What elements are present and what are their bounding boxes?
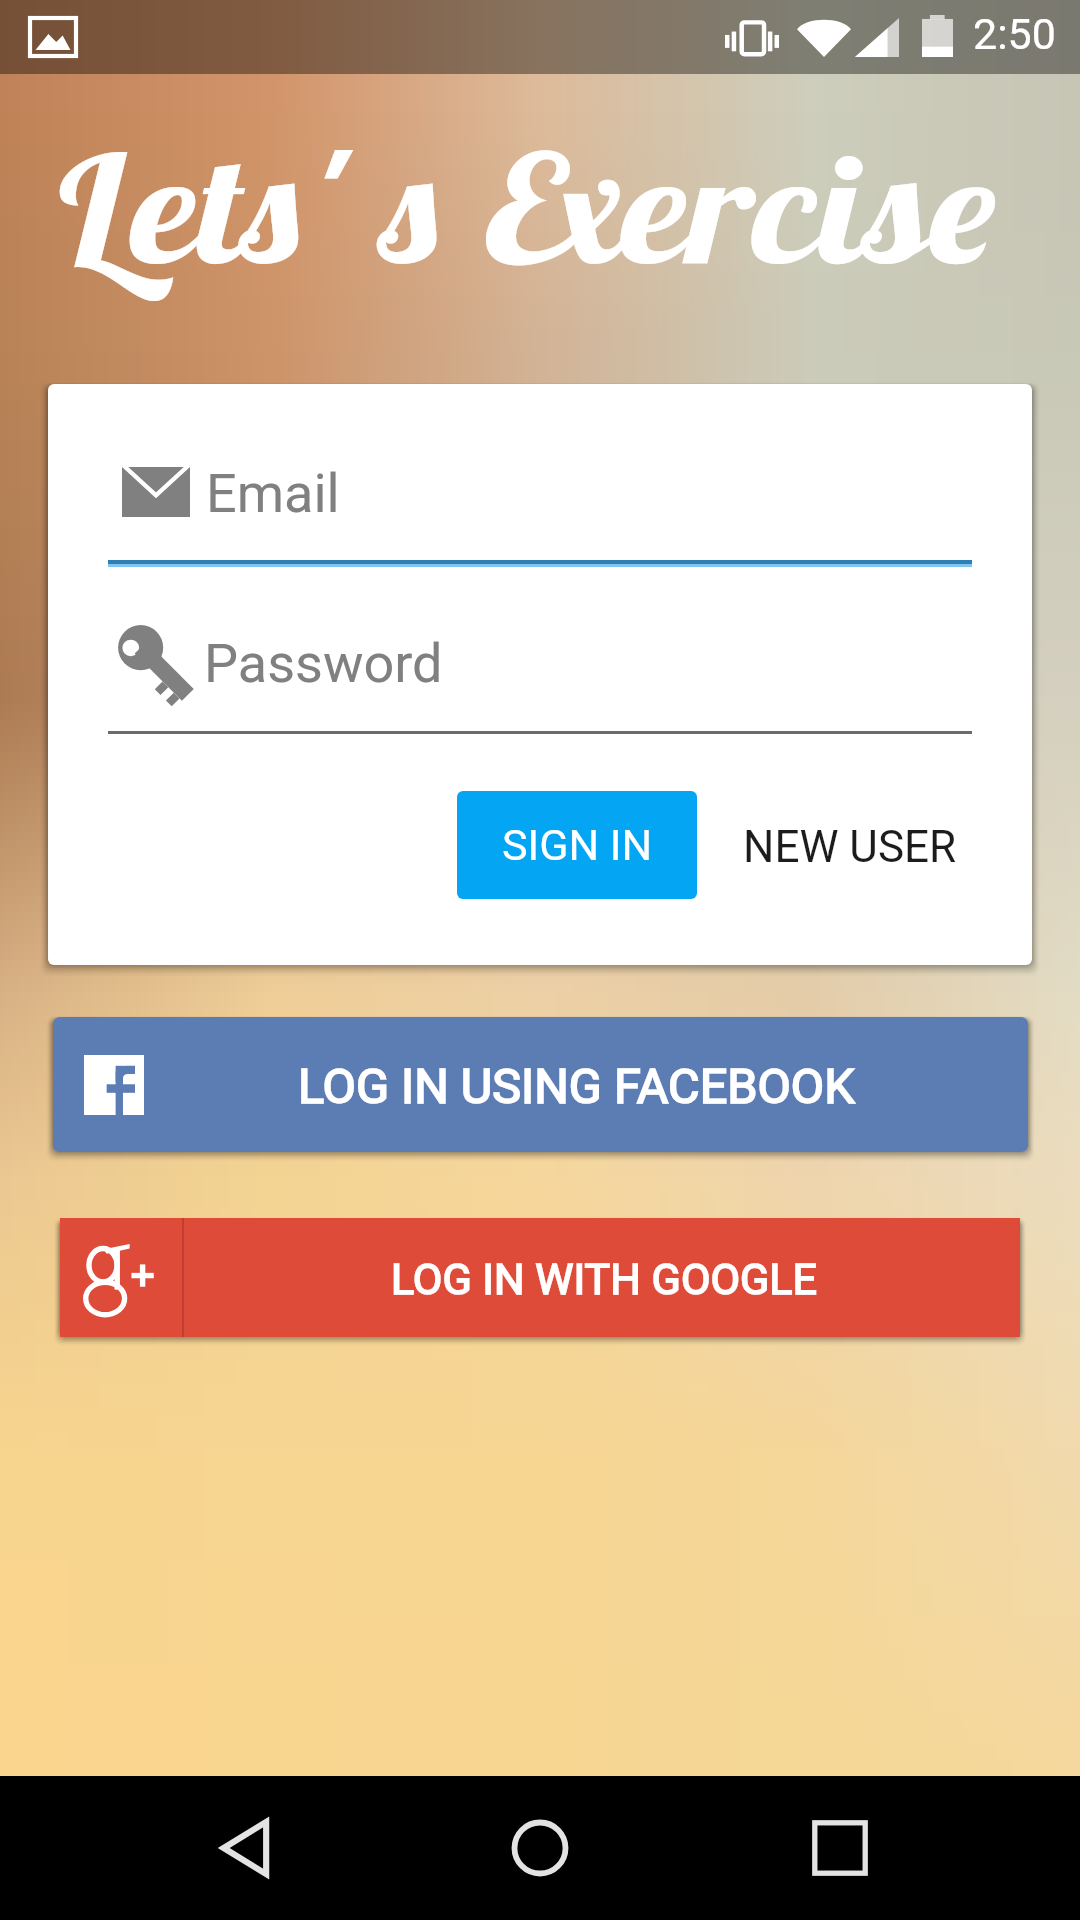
staticText: Lets' s Exercise xyxy=(0,113,1080,300)
staticText: Password xyxy=(204,632,443,695)
staticText: NEW USER xyxy=(743,821,957,873)
button[interactable]: SIGN IN xyxy=(457,791,697,899)
staticText: LOG IN USING FACEBOOK xyxy=(298,1058,855,1115)
button[interactable]: LOG IN USING FACEBOOK xyxy=(53,1017,1028,1152)
button[interactable]: LOG IN WITH GOOGLE xyxy=(60,1218,1020,1337)
staticText: 2:50 xyxy=(973,9,1056,59)
staticText: SIGN IN xyxy=(502,820,653,870)
staticText: LOG IN WITH GOOGLE xyxy=(391,1254,817,1304)
button[interactable]: Recent apps xyxy=(780,1788,900,1908)
button[interactable]: NEW USER xyxy=(719,793,981,901)
staticText: Email xyxy=(206,462,340,525)
button[interactable]: Home xyxy=(480,1788,600,1908)
button[interactable]: Back xyxy=(186,1788,306,1908)
